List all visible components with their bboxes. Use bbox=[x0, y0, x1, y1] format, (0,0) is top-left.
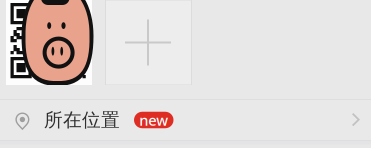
staticText: new bbox=[139, 110, 168, 130]
button[interactable]: Add photo bbox=[105, 0, 191, 85]
staticText: 所在位置 bbox=[44, 108, 120, 131]
button[interactable]: 所在位置 bbox=[0, 100, 371, 140]
